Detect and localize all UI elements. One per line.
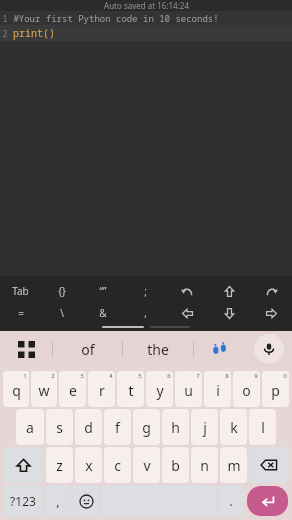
button[interactable]: {} — [41, 280, 82, 302]
staticText: e — [69, 381, 77, 400]
button[interactable]: ?123 — [3, 485, 43, 517]
button[interactable]: Tab — [0, 280, 41, 302]
staticText: #Your first Python code in 10 seconds! — [13, 12, 219, 24]
button[interactable]: Toolbar menu — [0, 331, 52, 367]
staticText: y — [156, 381, 164, 400]
staticText: d — [84, 418, 93, 437]
button[interactable]: Enter — [247, 486, 288, 516]
staticText: p — [271, 381, 280, 400]
button[interactable]: Emoji — [73, 485, 99, 517]
button[interactable]: d — [75, 409, 102, 445]
button[interactable]: Voice input — [246, 331, 292, 367]
button[interactable]: g — [133, 409, 160, 445]
button[interactable]: 7 — [175, 371, 202, 407]
button[interactable]: Comma — [45, 485, 71, 517]
staticText: s — [56, 418, 63, 437]
button[interactable]: m — [220, 447, 247, 483]
staticText: k — [230, 418, 238, 437]
button[interactable]: Period — [218, 485, 244, 517]
button[interactable]: c — [104, 447, 131, 483]
button[interactable]: 5 — [117, 371, 144, 407]
staticText: n — [200, 456, 209, 475]
staticText: t — [128, 381, 134, 400]
staticText: {} — [58, 284, 66, 298]
staticText: j — [203, 418, 207, 437]
button[interactable]: a — [16, 409, 44, 445]
button[interactable]: l — [249, 409, 276, 445]
button[interactable]: x — [75, 447, 102, 483]
button[interactable]: 2 — [31, 371, 57, 407]
button[interactable]: the — [123, 331, 193, 367]
button[interactable]: & — [82, 302, 124, 324]
staticText: h — [171, 418, 180, 437]
staticText: of — [81, 340, 95, 359]
staticText: Auto saved at 16:14:24 — [104, 0, 189, 11]
staticText: 8 — [225, 372, 229, 380]
button[interactable]: n — [191, 447, 218, 483]
button[interactable]: Emoji suggestion — [194, 331, 246, 367]
staticText: g — [142, 418, 151, 437]
button[interactable]: redo — [250, 280, 292, 302]
staticText: v — [143, 456, 151, 475]
button[interactable]: left — [166, 302, 208, 324]
staticText: 1 — [23, 372, 27, 380]
staticText: a — [26, 418, 34, 437]
staticText: l — [261, 418, 265, 437]
button[interactable]: of — [53, 331, 122, 367]
button[interactable]: 1 — [3, 371, 29, 407]
staticText: f — [115, 418, 120, 437]
staticText: z — [56, 456, 63, 475]
button[interactable]: 0 — [262, 371, 289, 407]
button[interactable]: f — [104, 409, 131, 445]
staticText: 1 — [2, 12, 8, 24]
button[interactable]: “” — [82, 280, 124, 302]
staticText: print() — [13, 26, 55, 40]
staticText: = — [18, 306, 24, 320]
staticText: w — [38, 381, 50, 400]
button[interactable]: j — [191, 409, 218, 445]
staticText: 2 — [2, 27, 8, 39]
staticText: the — [147, 340, 169, 359]
button[interactable]: 6 — [146, 371, 173, 407]
staticText: r — [99, 381, 105, 400]
button[interactable]: v — [133, 447, 160, 483]
button[interactable]: k — [220, 409, 247, 445]
staticText: i — [216, 381, 220, 400]
button[interactable]: h — [162, 409, 189, 445]
button[interactable]: , — [124, 302, 166, 324]
button[interactable]: 3 — [59, 371, 86, 407]
button[interactable]: Backspace — [249, 447, 289, 483]
button[interactable]: z — [46, 447, 73, 483]
button[interactable]: b — [162, 447, 189, 483]
staticText: o — [242, 381, 251, 400]
staticText: m — [227, 456, 241, 475]
staticText: & — [99, 306, 107, 320]
staticText: 7 — [196, 372, 200, 380]
button[interactable]: up — [208, 280, 250, 302]
staticText: u — [184, 381, 193, 400]
button[interactable]: ; — [124, 280, 166, 302]
button[interactable]: down — [208, 302, 250, 324]
staticText: , — [56, 492, 60, 510]
button[interactable]: = — [0, 302, 41, 324]
staticText: 4 — [109, 372, 113, 380]
button[interactable]: Shift — [3, 447, 44, 483]
staticText: . — [229, 492, 233, 510]
staticText: x — [85, 456, 93, 475]
button[interactable]: 8 — [204, 371, 231, 407]
button[interactable]: 4 — [88, 371, 115, 407]
button[interactable]: undo — [166, 280, 208, 302]
staticText: 9 — [254, 372, 258, 380]
button[interactable]: s — [46, 409, 73, 445]
staticText: c — [114, 456, 121, 475]
staticText: ?123 — [10, 493, 36, 509]
button[interactable]: right — [250, 302, 292, 324]
staticText: Tab — [12, 284, 29, 298]
staticText: b — [171, 456, 180, 475]
button[interactable]: \ — [41, 302, 82, 324]
staticText: q — [12, 381, 21, 400]
staticText: 0 — [283, 372, 287, 380]
button[interactable]: 9 — [233, 371, 260, 407]
staticText: ; — [144, 284, 147, 298]
